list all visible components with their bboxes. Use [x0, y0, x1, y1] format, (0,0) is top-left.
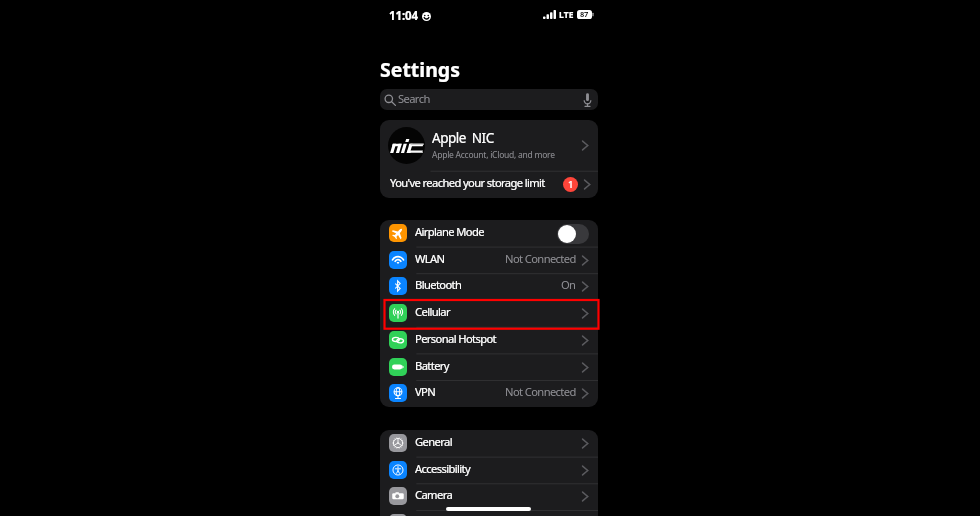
- button[interactable]: Apple NIC: [380, 120, 598, 171]
- staticText: Apple Account, iCloud, and more: [432, 149, 555, 161]
- button[interactable]: General: [380, 430, 598, 457]
- button[interactable]: Accessibility: [380, 457, 598, 484]
- staticText: 11:04: [389, 8, 419, 24]
- staticText: 1: [568, 178, 574, 191]
- staticText: Accessibility: [415, 461, 471, 476]
- button[interactable]: Camera: [380, 483, 598, 510]
- staticText: General: [415, 434, 452, 449]
- button[interactable]: Airplane Mode: [380, 220, 598, 247]
- staticText: Cellular: [415, 304, 450, 319]
- staticText: WLAN: [415, 251, 445, 266]
- staticText: Settings: [380, 56, 460, 83]
- staticText: Not Connected: [505, 384, 576, 399]
- button[interactable]: Personal Hotspot: [380, 327, 598, 354]
- button[interactable]: Search: [380, 89, 598, 110]
- staticText: Search: [398, 91, 430, 106]
- staticText: Bluetooth: [415, 277, 462, 292]
- button[interactable]: VPN: [380, 380, 598, 407]
- button[interactable]: WLAN: [380, 247, 598, 274]
- staticText: Battery: [415, 358, 449, 373]
- staticText: Personal Hotspot: [415, 331, 497, 346]
- staticText: On: [561, 277, 576, 292]
- button[interactable]: Cellular: [380, 300, 598, 327]
- staticText: Not Connected: [505, 251, 576, 266]
- button[interactable]: Photos: [380, 510, 598, 516]
- button[interactable]: Airplane Mode toggle: [557, 224, 589, 244]
- staticText: Apple NIC: [432, 129, 494, 147]
- staticText: You've reached your storage limit: [390, 175, 545, 190]
- staticText: 87: [580, 9, 589, 19]
- button[interactable]: Battery: [380, 354, 598, 381]
- staticText: Airplane Mode: [415, 224, 484, 239]
- staticText: LTE: [559, 9, 574, 21]
- button[interactable]: You've reached your storage limit: [380, 171, 598, 198]
- button[interactable]: Bluetooth: [380, 273, 598, 300]
- staticText: Camera: [415, 487, 453, 502]
- staticText: VPN: [415, 384, 436, 399]
